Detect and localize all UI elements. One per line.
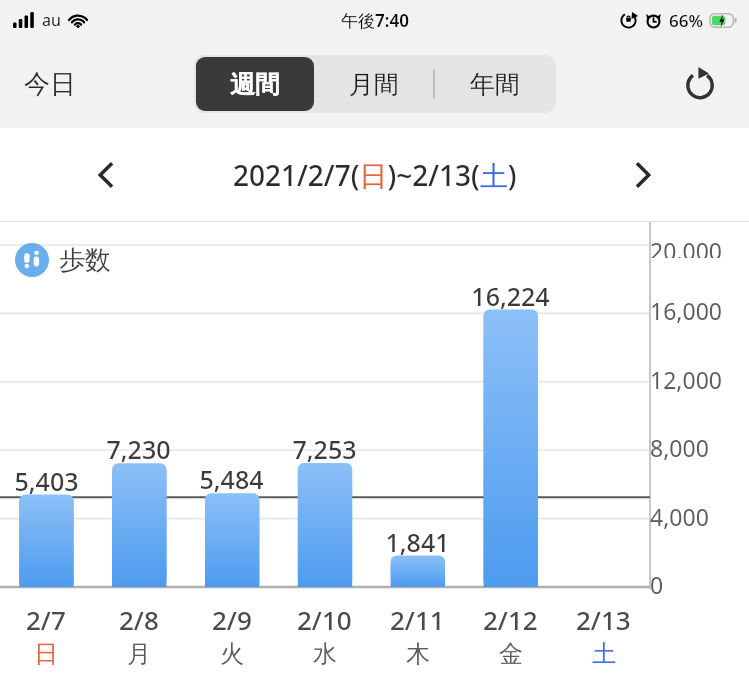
button[interactable]: 2/7 [0, 602, 92, 669]
staticText: 5,403 [14, 464, 79, 498]
staticText: 金 [499, 639, 523, 669]
button[interactable]: 2/13 [557, 602, 650, 669]
staticText: 週間 [230, 69, 280, 100]
staticText: 歩数 [59, 244, 111, 277]
button[interactable]: 2/8 [92, 602, 185, 669]
staticText: 火 [220, 639, 244, 669]
staticText: 月間 [349, 69, 399, 100]
staticText: 2/9 [212, 602, 252, 637]
button[interactable]: 今日 [16, 60, 84, 109]
button[interactable]: 2/12 [464, 602, 557, 669]
button[interactable]: Previous week [82, 151, 130, 199]
staticText: 5,484 [199, 462, 264, 496]
button[interactable]: 年間 [435, 57, 554, 111]
button[interactable]: 2/11 [371, 602, 464, 669]
button[interactable]: 週間 [196, 57, 314, 111]
staticText: 月 [127, 639, 151, 669]
staticText: 2/11 [390, 602, 445, 637]
staticText: 午後7:40 [341, 9, 409, 32]
staticText: 2/10 [297, 602, 352, 637]
staticText: 4,000 [650, 501, 741, 532]
button[interactable]: 2/10 [278, 602, 371, 669]
staticText: 66% [669, 9, 703, 32]
button[interactable]: 月間 [314, 57, 433, 111]
staticText: 水 [313, 639, 337, 669]
staticText: au [42, 9, 61, 31]
staticText: 16,000 [650, 295, 741, 326]
staticText: 日 [34, 639, 58, 669]
staticText: 2/8 [119, 602, 159, 637]
button[interactable]: 2/9 [185, 602, 278, 669]
button[interactable]: Refresh [675, 59, 725, 109]
staticText: 0 [650, 569, 741, 600]
staticText: 木 [406, 639, 430, 669]
staticText: 16,224 [471, 279, 550, 313]
staticText: 2/12 [483, 602, 538, 637]
staticText: 土 [592, 639, 616, 669]
button[interactable]: 歩数 [13, 241, 113, 279]
staticText: 今日 [24, 68, 76, 101]
staticText: 7,253 [292, 432, 357, 466]
staticText: 1,841 [385, 525, 450, 559]
staticText: 2021/2/7(日)~2/13(土) [233, 156, 517, 194]
staticText: 2/7 [26, 602, 66, 637]
staticText: 7,230 [106, 432, 171, 466]
staticText: 2/13 [576, 602, 631, 637]
button[interactable]: Next week [619, 151, 667, 199]
staticText: 12,000 [650, 364, 741, 395]
staticText: 8,000 [650, 432, 741, 463]
staticText: 年間 [470, 69, 520, 100]
staticText: 20,000 [650, 235, 741, 258]
